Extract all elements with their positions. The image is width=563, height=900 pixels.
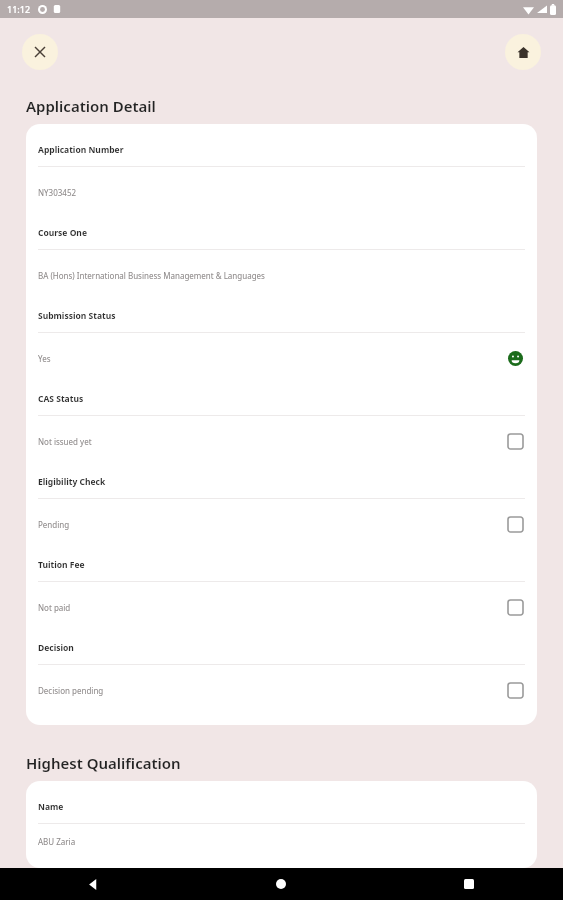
staticText: Application Number — [38, 144, 124, 156]
button[interactable]: Checkbox — [508, 517, 523, 532]
button[interactable]: BA (Hons) International Business Managem… — [38, 250, 525, 300]
staticText: NY303452 — [38, 187, 525, 198]
staticText: Pending — [38, 519, 508, 530]
staticText: Decision pending — [38, 685, 508, 696]
staticText: Yes — [38, 353, 508, 364]
button[interactable]: NY303452 — [38, 167, 525, 217]
staticText: BA (Hons) International Business Managem… — [38, 270, 525, 281]
staticText: Decision — [38, 642, 74, 654]
button[interactable]: Home — [505, 34, 541, 70]
button[interactable]: Checkbox — [508, 434, 523, 449]
button[interactable]: Back — [0, 868, 187, 900]
button[interactable]: Decision pending — [38, 665, 525, 715]
staticText: Highest Qualification — [26, 753, 181, 773]
staticText: Course One — [38, 227, 87, 239]
staticText: Not paid — [38, 602, 508, 613]
button[interactable]: Checkbox — [508, 600, 523, 615]
button[interactable]: Pending — [38, 499, 525, 549]
button[interactable]: Recent apps — [375, 868, 563, 900]
staticText: Not issued yet — [38, 436, 508, 447]
button[interactable]: Close — [22, 34, 58, 70]
staticText: Eligibility Check — [38, 476, 106, 488]
staticText: CAS Status — [38, 393, 84, 405]
button[interactable]: Not issued yet — [38, 416, 525, 466]
staticText: Submission Status — [38, 310, 116, 322]
staticText: Name — [38, 801, 64, 813]
staticText: ABU Zaria — [38, 836, 525, 847]
staticText: Application Detail — [26, 96, 156, 116]
button[interactable]: Checkbox — [508, 683, 523, 698]
button[interactable]: Not paid — [38, 582, 525, 632]
button[interactable]: Home — [187, 868, 375, 900]
button[interactable]: ABU Zaria — [38, 824, 525, 858]
staticText: 11:12 — [7, 3, 31, 15]
staticText: Tuition Fee — [38, 559, 85, 571]
button[interactable]: Yes — [38, 333, 525, 383]
